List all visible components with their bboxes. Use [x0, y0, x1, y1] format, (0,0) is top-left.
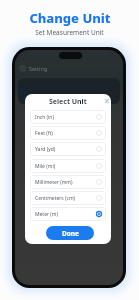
staticText: Yard (yd): [35, 146, 56, 153]
button[interactable]: Meter (m): [30, 207, 106, 221]
button[interactable]: Feet (ft): [30, 126, 106, 140]
staticText: Done: [62, 229, 79, 238]
staticText: Inch (in): [35, 114, 54, 121]
staticText: Mile (mi): [35, 163, 56, 170]
staticText: Centimeters (cm): [35, 195, 76, 202]
button[interactable]: Millimeter (mm): [30, 175, 106, 189]
button[interactable]: Close: [102, 96, 111, 105]
staticText: Select Unit: [49, 97, 87, 107]
staticText: Meter (m): [35, 211, 59, 218]
button[interactable]: Mile (mi): [30, 159, 106, 173]
button[interactable]: Yard (yd): [30, 142, 106, 156]
button[interactable]: Inch (in): [30, 110, 106, 124]
staticText: Feet (ft): [35, 130, 53, 137]
staticText: Set Measurement Unit: [35, 28, 104, 37]
staticText: Millimeter (mm): [35, 179, 73, 186]
staticText: Change Unit: [29, 9, 111, 27]
button[interactable]: Done: [46, 226, 94, 240]
button[interactable]: Centimeters (cm): [30, 191, 106, 205]
staticText: Setting: [29, 65, 48, 72]
